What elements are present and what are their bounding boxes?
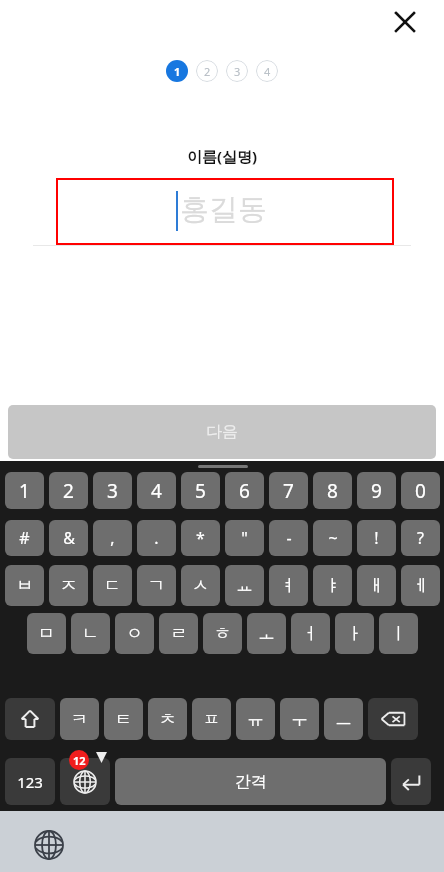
staticText: , (110, 527, 115, 549)
button[interactable]: ㅕ (269, 565, 308, 606)
button[interactable]: ㅊ (148, 698, 187, 740)
button[interactable]: 8 (313, 472, 352, 509)
staticText: ㅛ (236, 575, 253, 596)
staticText: " (241, 527, 248, 549)
button[interactable]: 2 (196, 60, 218, 82)
button[interactable]: 7 (269, 472, 308, 509)
button[interactable]: 홍길동 (56, 178, 394, 245)
button[interactable]: ㅁ (27, 613, 66, 654)
button[interactable]: ㅏ (335, 613, 374, 654)
button[interactable]: 다음 (8, 405, 436, 459)
staticText: 다음 (206, 422, 238, 442)
button[interactable]: 1 (166, 60, 188, 82)
button[interactable]: ㅔ (401, 565, 440, 606)
button[interactable]: Change language (60, 758, 110, 805)
button[interactable]: 3 (93, 472, 132, 509)
button[interactable]: ㅜ (280, 698, 319, 740)
button[interactable]: ㅌ (104, 698, 143, 740)
button[interactable]: 6 (225, 472, 264, 509)
button[interactable]: ㅣ (379, 613, 418, 654)
button[interactable]: ㅛ (225, 565, 264, 606)
staticText: ㅜ (291, 709, 308, 730)
button[interactable]: # (5, 520, 44, 556)
button[interactable]: ㄹ (159, 613, 198, 654)
button[interactable]: ㅎ (203, 613, 242, 654)
button[interactable]: ㅗ (247, 613, 286, 654)
staticText: ~ (328, 527, 338, 549)
staticText: 9 (371, 478, 382, 504)
staticText: . (154, 527, 159, 549)
staticText: ㅡ (335, 709, 352, 730)
button[interactable]: ㄴ (71, 613, 110, 654)
staticText: ㅓ (302, 623, 319, 644)
staticText: 3 (107, 478, 118, 504)
staticText: ㄹ (170, 623, 187, 644)
staticText: 6 (239, 478, 250, 504)
staticText: ㅊ (159, 709, 176, 730)
button[interactable]: ~ (313, 520, 352, 556)
staticText: & (63, 527, 75, 549)
staticText: ㅂ (16, 575, 33, 596)
button[interactable]: ㅂ (5, 565, 44, 606)
staticText: 1 (19, 478, 30, 504)
button[interactable]: , (93, 520, 132, 556)
button[interactable]: 3 (226, 60, 248, 82)
button[interactable]: 4 (137, 472, 176, 509)
staticText: ㅇ (126, 623, 143, 644)
staticText: 5 (195, 478, 206, 504)
button[interactable]: ㅇ (115, 613, 154, 654)
button[interactable]: Close (385, 2, 425, 42)
button[interactable]: ㅑ (313, 565, 352, 606)
button[interactable]: ㅈ (49, 565, 88, 606)
button[interactable]: ㅐ (357, 565, 396, 606)
button[interactable]: ! (357, 520, 396, 556)
button[interactable]: 123 (5, 758, 55, 805)
staticText: 8 (327, 478, 338, 504)
button[interactable]: 0 (401, 472, 440, 509)
button[interactable]: ㄱ (137, 565, 176, 606)
button[interactable]: - (269, 520, 308, 556)
button[interactable]: 간격 (115, 758, 386, 805)
button[interactable]: & (49, 520, 88, 556)
staticText: ㅁ (38, 623, 55, 644)
button[interactable]: . (137, 520, 176, 556)
staticText: 4 (264, 64, 271, 79)
staticText: 2 (204, 64, 211, 79)
staticText: 12 (73, 753, 86, 768)
staticText: ㅌ (115, 709, 132, 730)
button[interactable]: ㅍ (192, 698, 231, 740)
button[interactable]: Shift (5, 698, 55, 740)
staticText: ㅕ (280, 575, 297, 596)
staticText: 홍길동 (180, 191, 267, 228)
staticText: 간격 (235, 772, 267, 792)
staticText: 이름(실명) (187, 146, 258, 166)
button[interactable]: ㄷ (93, 565, 132, 606)
button[interactable]: ㅅ (181, 565, 220, 606)
button[interactable]: 4 (256, 60, 278, 82)
staticText: ㄴ (82, 623, 99, 644)
staticText: ㅈ (60, 575, 77, 596)
button[interactable]: " (225, 520, 264, 556)
button[interactable]: ? (401, 520, 440, 556)
button[interactable]: ㅠ (236, 698, 275, 740)
button[interactable]: Language (30, 826, 68, 864)
button[interactable]: Enter (391, 758, 431, 805)
button[interactable]: 9 (357, 472, 396, 509)
button[interactable]: 1 (5, 472, 44, 509)
staticText: ㅔ (412, 575, 429, 596)
staticText: ㅍ (203, 709, 220, 730)
staticText: 3 (234, 64, 241, 79)
button[interactable]: ㅋ (60, 698, 99, 740)
button[interactable]: ㅓ (291, 613, 330, 654)
staticText: ㅠ (247, 709, 264, 730)
button[interactable]: 5 (181, 472, 220, 509)
staticText: 0 (415, 478, 426, 504)
staticText: 1 (174, 64, 181, 79)
staticText: 2 (63, 478, 74, 504)
staticText: ㅏ (346, 623, 363, 644)
button[interactable]: * (181, 520, 220, 556)
button[interactable]: 2 (49, 472, 88, 509)
staticText: ㅎ (214, 623, 231, 644)
button[interactable]: ㅡ (324, 698, 363, 740)
button[interactable]: Backspace (368, 698, 418, 740)
